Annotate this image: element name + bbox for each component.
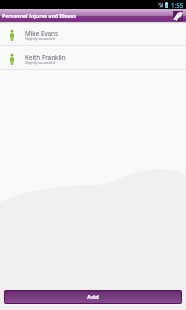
staticText: Keith Franklin [25, 53, 66, 62]
button[interactable]: Mike Evans [0, 22, 186, 46]
button[interactable]: IFS app home [173, 11, 183, 21]
staticText: 1:55 [171, 1, 184, 9]
staticText: Add [87, 293, 99, 301]
button[interactable]: Keith Franklin [0, 46, 186, 70]
button[interactable]: Add [5, 291, 181, 303]
staticText: Personnel Injures and Illness [2, 12, 77, 19]
staticText: Mike Evans [25, 29, 59, 38]
staticText: Slightly wounded [25, 36, 55, 41]
staticText: Slightly wounded [25, 60, 55, 65]
